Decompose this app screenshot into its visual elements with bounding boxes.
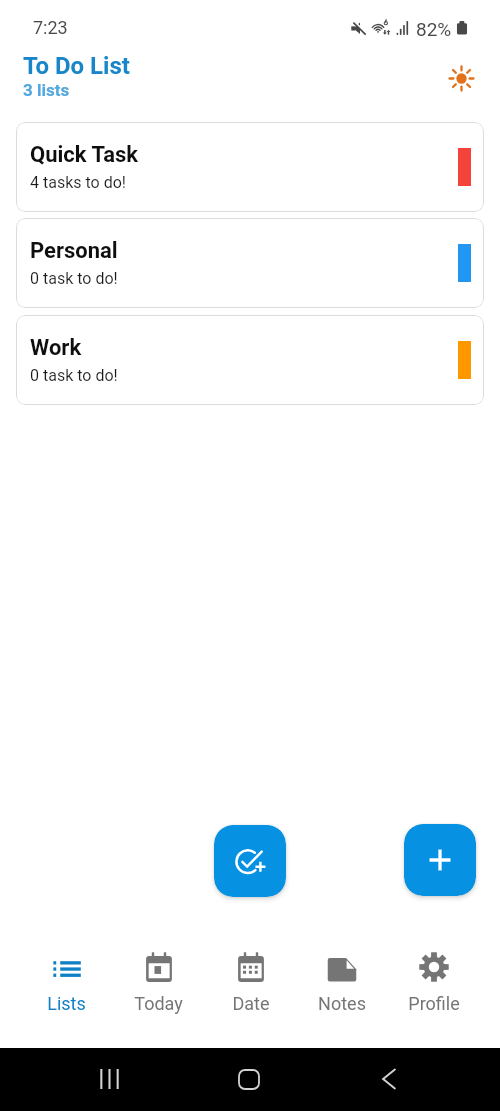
staticText: Today — [134, 993, 183, 1014]
staticText: 0 task to do! — [30, 269, 118, 288]
button[interactable]: Recent apps — [79, 1050, 139, 1110]
button[interactable]: Toggle light mode — [442, 59, 480, 97]
button[interactable]: Work — [16, 315, 484, 405]
staticText: Notes — [318, 993, 366, 1014]
button[interactable]: Back — [359, 1050, 419, 1110]
staticText: 7:23 — [33, 17, 68, 38]
staticText: Date — [232, 993, 270, 1014]
staticText: Personal — [30, 238, 118, 264]
button[interactable]: To Do List — [23, 52, 130, 100]
button[interactable]: Add list — [404, 824, 476, 896]
staticText: To Do List — [23, 52, 130, 80]
button[interactable]: Date — [209, 950, 292, 1014]
staticText: Profile — [408, 993, 460, 1014]
staticText: 82% — [416, 18, 452, 40]
staticText: 4 tasks to do! — [30, 173, 126, 192]
staticText: 0 task to do! — [30, 366, 118, 385]
staticText: Work — [30, 335, 82, 361]
button[interactable]: Today — [117, 950, 200, 1014]
button[interactable]: Add task — [214, 825, 286, 897]
button[interactable]: Profile — [392, 950, 475, 1014]
staticText: Lists — [47, 993, 86, 1014]
button[interactable]: Personal — [16, 218, 484, 308]
button[interactable]: Quick Task — [16, 122, 484, 212]
button[interactable]: Lists — [25, 950, 108, 1014]
button[interactable]: Notes — [300, 950, 383, 1014]
staticText: 3 lists — [23, 80, 70, 100]
staticText: Quick Task — [30, 142, 139, 168]
button[interactable]: Home — [220, 1050, 280, 1110]
